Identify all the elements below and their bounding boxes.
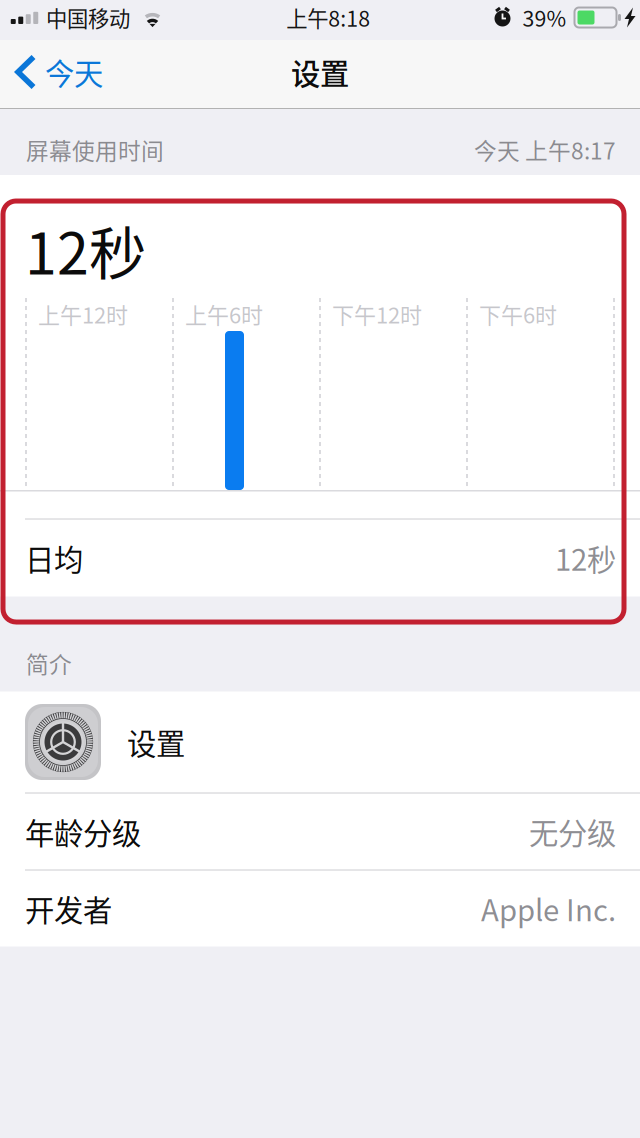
staticText: 设置: [291, 51, 349, 93]
staticText: Apple Inc.: [481, 887, 616, 930]
staticText: 开发者: [25, 887, 112, 930]
staticText: 今天: [45, 51, 103, 93]
button[interactable]: 开发者: [0, 870, 640, 946]
staticText: 设置: [127, 721, 185, 763]
staticText: 屏幕使用时间: [26, 133, 164, 166]
staticText: 12秒: [555, 537, 616, 579]
staticText: 年龄分级: [25, 810, 141, 853]
staticText: 下午12时: [332, 298, 422, 330]
staticText: 下午6时: [479, 298, 557, 330]
staticText: 39%: [522, 2, 566, 33]
staticText: 12秒: [25, 208, 146, 291]
button[interactable]: 年龄分级: [0, 793, 640, 869]
button[interactable]: 今天: [0, 40, 115, 108]
staticText: 上午8:18: [286, 2, 370, 33]
staticText: 简介: [26, 647, 72, 679]
staticText: 中国移动: [46, 2, 130, 33]
staticText: 上午12时: [38, 298, 128, 330]
staticText: 今天 上午8:17: [474, 133, 616, 166]
staticText: 无分级: [529, 810, 616, 853]
staticText: 上午6时: [185, 298, 263, 330]
staticText: 日均: [25, 537, 83, 579]
